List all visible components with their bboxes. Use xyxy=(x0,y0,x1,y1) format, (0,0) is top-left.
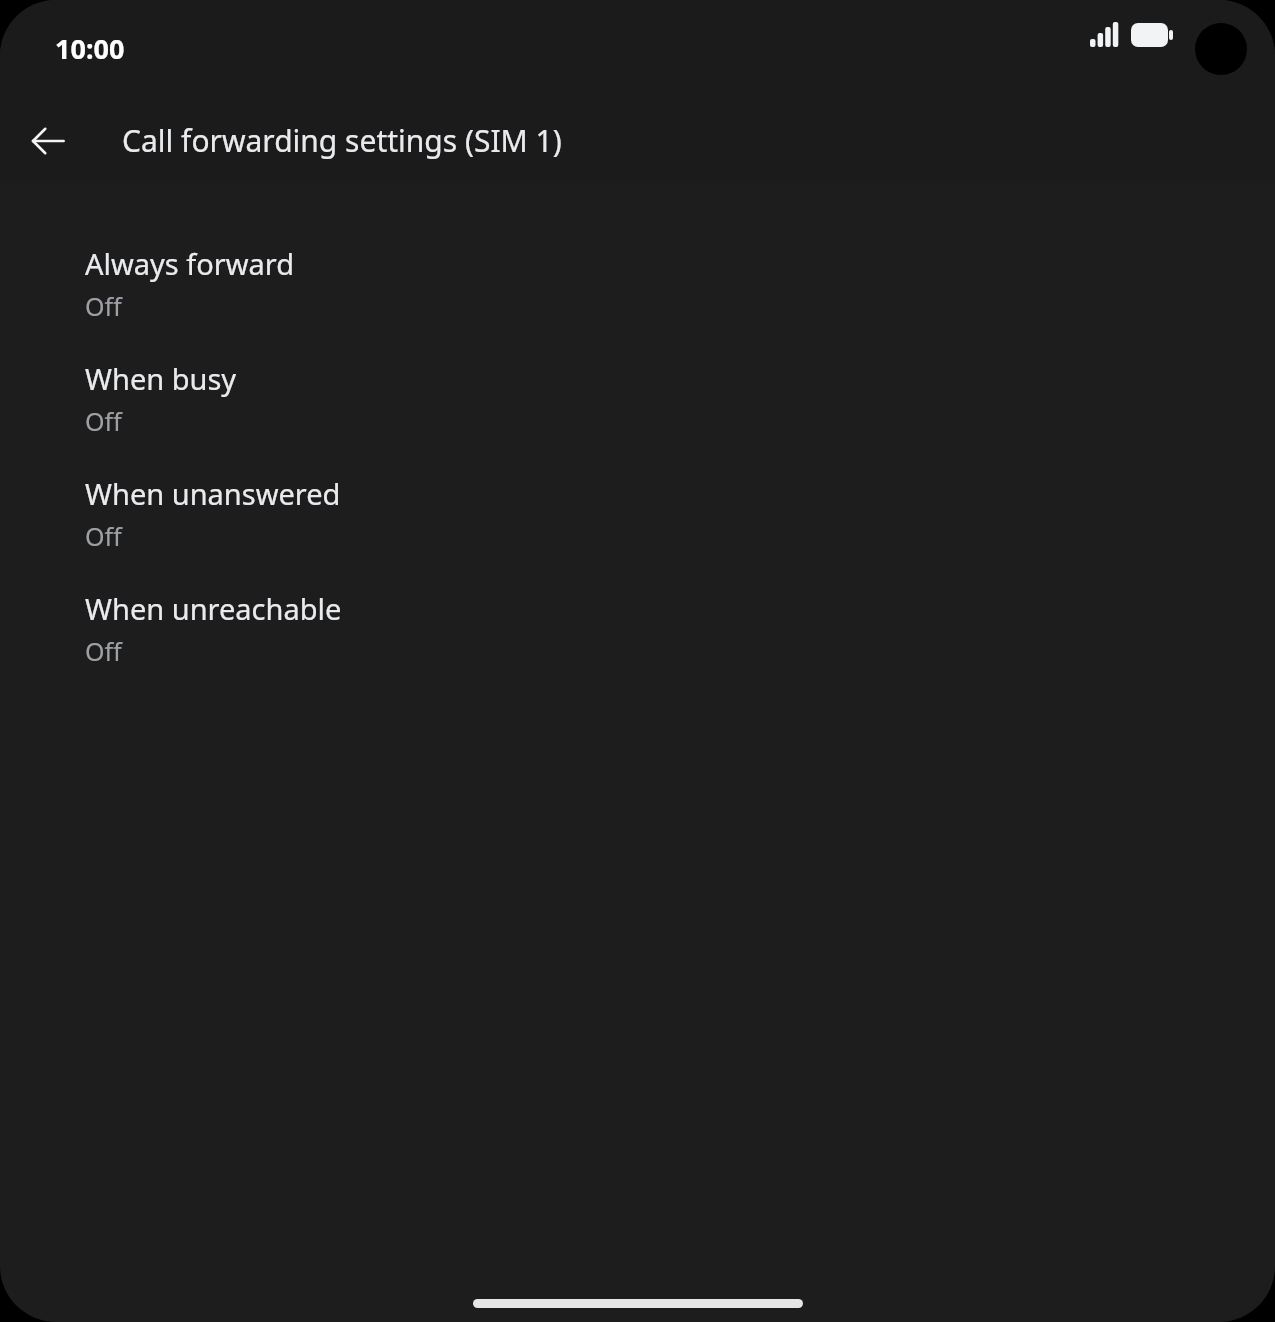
staticText: Off xyxy=(85,289,122,323)
staticText: Off xyxy=(85,404,122,438)
staticText: When unanswered xyxy=(85,474,341,513)
button[interactable]: When busy xyxy=(0,359,1275,474)
staticText: Call forwarding settings (SIM 1) xyxy=(122,120,562,161)
staticText: Off xyxy=(85,519,122,553)
staticText: 10:00 xyxy=(55,30,125,67)
staticText: Always forward xyxy=(85,244,295,283)
button[interactable]: Back xyxy=(0,98,96,183)
staticText: When unreachable xyxy=(85,589,342,628)
button[interactable]: When unreachable xyxy=(0,589,1275,704)
staticText: Off xyxy=(85,634,122,668)
button[interactable]: Always forward xyxy=(0,244,1275,359)
staticText: When busy xyxy=(85,359,237,398)
button[interactable]: When unanswered xyxy=(0,474,1275,589)
